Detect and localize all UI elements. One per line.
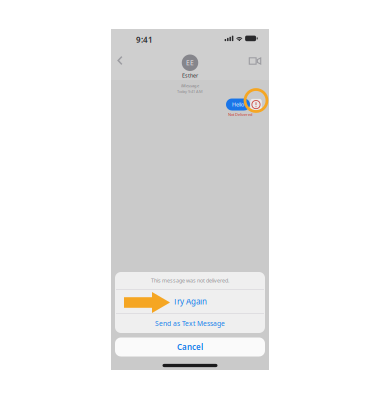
staticText: EE bbox=[186, 58, 194, 67]
button[interactable]: FaceTime video call bbox=[247, 54, 263, 68]
button[interactable]: Try Again bbox=[115, 290, 265, 313]
button[interactable]: Send as Text Message bbox=[115, 313, 265, 333]
staticText: This message was not delivered. bbox=[151, 277, 229, 284]
staticText: Try Again bbox=[173, 296, 207, 307]
button[interactable]: Back bbox=[113, 53, 127, 67]
staticText: Today 9:41 AM bbox=[177, 89, 203, 94]
button[interactable]: Cancel bbox=[115, 337, 265, 356]
staticText: Esther bbox=[182, 72, 198, 79]
staticText: Cancel bbox=[177, 342, 203, 352]
staticText: Hello bbox=[232, 101, 244, 108]
staticText: Not Delivered bbox=[228, 112, 252, 117]
staticText: Send as Text Message bbox=[155, 319, 225, 328]
staticText: iMessage bbox=[181, 83, 199, 88]
staticText: 9:41 bbox=[136, 34, 153, 45]
button[interactable]: Message not delivered bbox=[250, 99, 261, 110]
